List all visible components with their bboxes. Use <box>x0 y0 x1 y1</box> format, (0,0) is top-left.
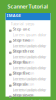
staticText: Lorem ipsum dolor sit amet con <box>13 43 47 54</box>
staticText: sectetur adipiscing elit sed. <box>13 43 45 53</box>
staticText: IMAGE <box>7 13 21 18</box>
staticText: Lorem ipsum dolor sit amet con <box>13 65 47 76</box>
staticText: Step five <box>13 70 30 76</box>
button[interactable]: Step six <box>5 81 50 92</box>
button[interactable]: Step seven <box>5 92 50 100</box>
staticText: Step three <box>13 48 34 54</box>
staticText: Lorem ipsum dolor sit amet con <box>13 87 47 98</box>
staticText: sectetur adipiscing elit sed. <box>13 65 45 75</box>
button[interactable]: Step four <box>5 59 50 70</box>
staticText: Step two <box>13 37 30 43</box>
staticText: Step seven <box>13 92 34 98</box>
staticText: Lorem ipsum dolor sit amet con <box>13 54 47 65</box>
staticText: Lorem ipsum dolor sit amet con <box>13 98 47 100</box>
staticText: sectetur adipiscing elit sed. <box>13 98 45 100</box>
staticText: Step four <box>13 59 31 65</box>
button[interactable]: Step five <box>5 70 50 81</box>
staticText: sectetur adipiscing elit sed. <box>13 76 45 86</box>
staticText: sectetur adipiscing elit sed. <box>13 87 45 97</box>
button[interactable]: Step two <box>5 37 50 48</box>
staticText: Lorem ipsum dolor sit amet con <box>13 76 47 87</box>
staticText: Tutorial steps <box>10 21 34 26</box>
staticText: sectetur adipiscing elit sed. <box>13 54 45 64</box>
button[interactable]: Step one <box>5 26 50 37</box>
staticText: Lorem ipsum dolor sit amet con <box>13 32 47 43</box>
staticText: Scanner Tutorial <box>7 3 48 10</box>
button[interactable]: Step three <box>5 48 50 59</box>
staticText: Step six <box>13 81 28 87</box>
staticText: Step one <box>13 26 30 32</box>
